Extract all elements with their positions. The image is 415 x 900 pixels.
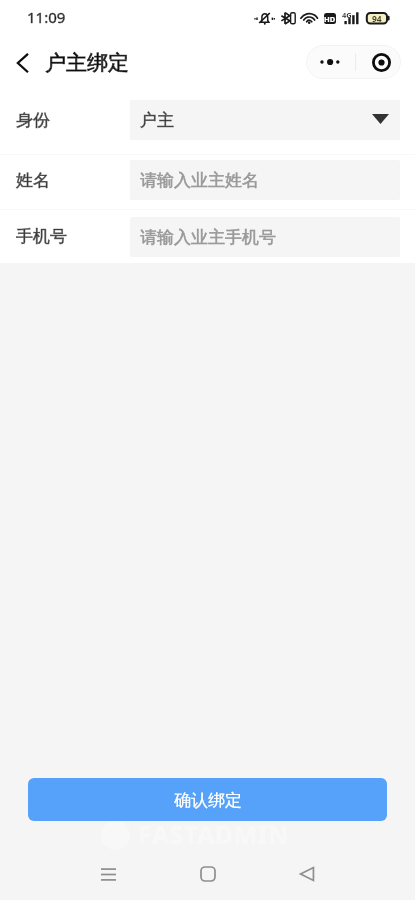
button[interactable]: Recent apps	[84, 850, 132, 898]
staticText: 手机号	[16, 226, 67, 247]
button[interactable]: Home	[184, 850, 232, 898]
staticText: 4G	[342, 10, 352, 20]
staticText: 户主绑定	[45, 50, 129, 76]
staticText: 姓名	[16, 170, 50, 191]
staticText: 请输入业主姓名	[140, 170, 259, 191]
button[interactable]: 确认绑定	[28, 778, 387, 821]
staticText: 请输入业主手机号	[140, 227, 276, 248]
staticText: 手机号	[16, 226, 67, 247]
staticText: 请输入业主姓名	[140, 170, 259, 191]
staticText: FASTADMIN	[138, 817, 289, 851]
staticText: 11:09	[27, 7, 66, 27]
button[interactable]: Back	[8, 49, 36, 77]
staticText: 94	[372, 13, 382, 24]
staticText: 身份	[16, 110, 50, 131]
staticText: 户主	[140, 110, 174, 131]
staticText: 请输入业主手机号	[140, 227, 276, 248]
button[interactable]: Close	[356, 45, 401, 79]
staticText: 身份	[16, 110, 50, 131]
button[interactable]: 姓名	[0, 155, 415, 209]
staticText: 姓名	[16, 170, 50, 191]
staticText: HD	[324, 14, 336, 24]
staticText: 11:09	[27, 7, 66, 27]
staticText: 户主绑定	[45, 50, 129, 76]
button[interactable]: Back	[283, 850, 331, 898]
button[interactable]: More options	[306, 45, 355, 79]
button[interactable]: 手机号	[0, 210, 415, 263]
staticText: 确认绑定	[174, 790, 242, 811]
button[interactable]: 身份	[0, 92, 415, 154]
staticText: 户主	[140, 110, 174, 131]
